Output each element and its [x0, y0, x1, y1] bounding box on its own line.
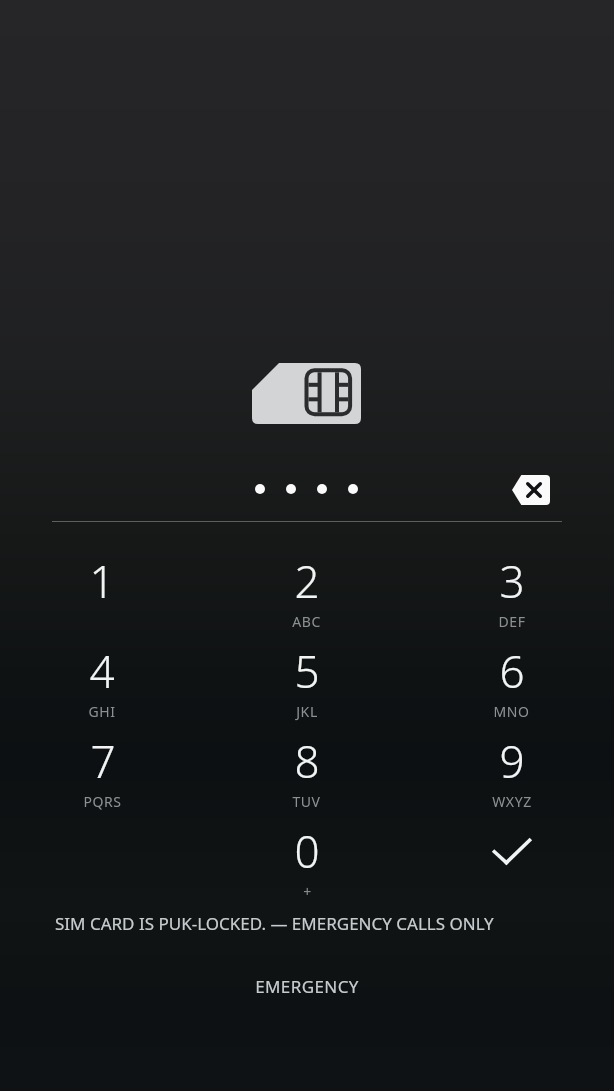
button[interactable]: 8: [204, 725, 409, 815]
staticText: ABC: [292, 612, 321, 631]
staticText: 5: [294, 641, 320, 701]
staticText: 0: [294, 821, 320, 881]
staticText: GHI: [88, 702, 116, 721]
staticText: 1: [89, 551, 115, 611]
staticText: WXYZ: [492, 792, 532, 811]
staticText: 3: [499, 551, 525, 611]
staticText: 2: [294, 551, 320, 611]
staticText: TUV: [292, 792, 321, 811]
staticText: 9: [499, 731, 525, 791]
button[interactable]: Enter: [409, 815, 614, 905]
staticText: 7: [90, 731, 116, 791]
staticText: 8: [294, 731, 320, 791]
button[interactable]: 1: [0, 545, 204, 635]
staticText: MNO: [493, 702, 530, 721]
button[interactable]: 7: [0, 725, 204, 815]
button[interactable]: 3: [409, 545, 614, 635]
button[interactable]: 6: [409, 635, 614, 725]
staticText: DEF: [498, 612, 526, 631]
staticText: +: [303, 882, 312, 901]
button[interactable]: EMERGENCY: [0, 965, 614, 1007]
button[interactable]: Backspace: [505, 468, 557, 512]
button[interactable]: 2: [204, 545, 409, 635]
staticText: 4: [89, 641, 115, 701]
staticText: EMERGENCY: [255, 975, 359, 998]
button[interactable]: 4: [0, 635, 204, 725]
staticText: SIM CARD IS PUK-LOCKED. — EMERGENCY CALL…: [55, 912, 494, 935]
button[interactable]: 0: [204, 815, 409, 905]
staticText: JKL: [296, 702, 318, 721]
staticText: 6: [499, 641, 525, 701]
button[interactable]: 5: [204, 635, 409, 725]
button[interactable]: 9: [409, 725, 614, 815]
staticText: PQRS: [83, 792, 122, 811]
